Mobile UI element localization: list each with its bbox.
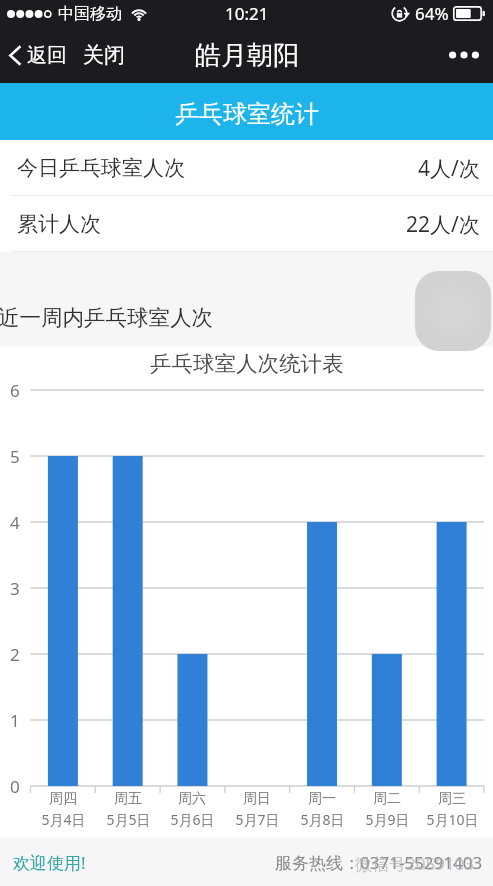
button[interactable]: 返回: [0, 39, 71, 72]
staticText: 22人/次: [406, 210, 480, 239]
staticText: 64%: [415, 2, 449, 25]
button[interactable]: 关闭: [77, 37, 131, 73]
staticText: 6: [10, 379, 20, 402]
staticText: 微信号2059103: [355, 852, 475, 875]
button[interactable]: 欢迎使用!: [13, 851, 86, 874]
button[interactable]: 今日乒乓球室人次: [0, 140, 493, 196]
staticText: 周二: [373, 790, 401, 808]
staticText: 中国移动: [58, 4, 122, 24]
staticText: 4: [10, 511, 20, 534]
staticText: 5月8日: [300, 810, 345, 829]
staticText: 返回: [27, 43, 67, 68]
staticText: 1: [10, 709, 20, 732]
staticText: 5月5日: [106, 810, 151, 829]
button[interactable]: More options: [435, 41, 493, 69]
staticText: 今日乒乓球室人次: [17, 155, 185, 181]
staticText: 周五: [114, 790, 142, 808]
staticText: 周三: [438, 790, 466, 808]
staticText: 4人/次: [418, 154, 480, 183]
button[interactable]: 乒乓球室统计: [0, 83, 493, 140]
staticText: 2: [10, 643, 20, 666]
staticText: 5月4日: [41, 810, 86, 829]
staticText: 乒乓球室人次统计表: [150, 350, 344, 377]
staticText: 皓月朝阳: [195, 39, 299, 72]
staticText: 周四: [49, 790, 77, 808]
button[interactable]: 累计人次: [0, 196, 493, 252]
staticText: 5月10日: [426, 810, 479, 829]
staticText: 5月7日: [235, 810, 280, 829]
staticText: 服务热线：0371-55291403: [275, 851, 483, 874]
staticText: 累计人次: [17, 211, 101, 237]
staticText: 乒乓球室统计: [175, 99, 319, 129]
staticText: 10:21: [225, 2, 269, 25]
staticText: 5月9日: [365, 810, 410, 829]
staticText: 3: [10, 577, 20, 600]
button[interactable]: Floating action button: [415, 271, 491, 351]
staticText: 0: [10, 775, 20, 798]
staticText: 5: [10, 445, 20, 468]
staticText: 近一周内乒乓球室人次: [0, 304, 213, 331]
staticText: 周日: [243, 790, 271, 808]
staticText: 周六: [178, 790, 206, 808]
staticText: 5月6日: [170, 810, 215, 829]
staticText: 周一: [308, 790, 336, 808]
